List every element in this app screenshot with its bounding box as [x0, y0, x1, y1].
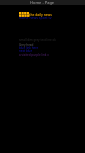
staticText: small dim grey text line ok [19, 38, 56, 42]
staticText: the daily news [29, 13, 52, 17]
staticText: a visited purple link x [19, 53, 49, 57]
staticText: next blue [19, 49, 33, 53]
staticText: Home - Page [30, 0, 55, 5]
staticText: home news sport tv [19, 15, 52, 20]
staticText: blue link here [19, 46, 39, 50]
staticText: Grey head [19, 43, 34, 47]
